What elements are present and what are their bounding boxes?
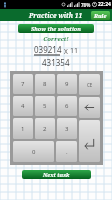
button[interactable]: 3 (57, 118, 77, 139)
button[interactable]: Rule (91, 11, 110, 20)
staticText: 11 (70, 46, 79, 56)
staticText: Rule (94, 12, 107, 19)
button[interactable]: 0 (13, 141, 54, 162)
staticText: 0 (32, 148, 36, 156)
button[interactable]: 2 (35, 118, 55, 139)
staticText: 9 (65, 80, 69, 88)
staticText: Correct! (0, 35, 112, 43)
staticText: 3 (65, 125, 69, 133)
button[interactable]: Show the solution (18, 24, 94, 33)
staticText: 039214 (34, 44, 62, 55)
button[interactable]: Next task (22, 170, 91, 179)
button[interactable]: 9 (57, 74, 77, 94)
staticText: 431354 (42, 57, 70, 68)
staticText: 1 (21, 125, 25, 133)
button[interactable]: 4 (13, 96, 33, 116)
button[interactable]: 1 (13, 118, 33, 139)
staticText: 5 (43, 102, 47, 110)
staticText: Show the solution (31, 25, 81, 32)
staticText: Practice with 11 (29, 11, 83, 20)
staticText: Next task (43, 171, 70, 178)
button[interactable]: 8 (35, 74, 55, 94)
staticText: 4 (21, 102, 25, 110)
staticText: 2 (43, 125, 47, 133)
button[interactable]: 5 (35, 96, 55, 116)
button[interactable]: . (56, 141, 77, 162)
staticText: 78% (81, 2, 91, 8)
button[interactable]: Enter (79, 120, 100, 162)
button[interactable]: CE (79, 74, 100, 95)
button[interactable]: 7 (13, 74, 33, 94)
staticText: . (66, 148, 68, 156)
staticText: 7 (21, 80, 25, 88)
staticText: 22:24 (98, 1, 111, 8)
staticText: X (64, 47, 68, 56)
staticText: 8 (43, 80, 47, 88)
button[interactable]: 6 (57, 96, 77, 116)
staticText: CE (87, 82, 93, 88)
button[interactable]: Backspace (79, 97, 100, 118)
staticText: 6 (65, 102, 69, 110)
